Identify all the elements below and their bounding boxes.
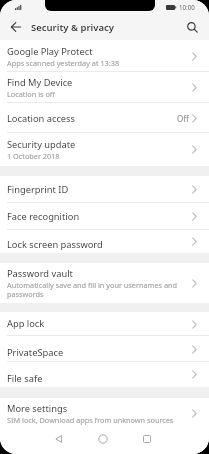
staticText: File safe — [7, 372, 43, 385]
button[interactable]: File safe — [0, 362, 209, 387]
button[interactable]: Location access — [0, 103, 209, 133]
staticText: Security & privacy — [31, 21, 114, 34]
button[interactable] — [140, 432, 154, 446]
button[interactable]: App lock — [0, 312, 209, 336]
button[interactable]: Find My Device — [0, 72, 209, 103]
staticText: Apps scanned yesterday at 13:38 — [7, 58, 120, 68]
button[interactable] — [52, 432, 66, 446]
staticText: 10:00 — [179, 3, 195, 11]
button[interactable]: More settings — [0, 398, 209, 428]
staticText: Location access — [7, 112, 76, 125]
staticText: Find My Device — [7, 76, 73, 89]
staticText: Lock screen password — [7, 238, 103, 251]
staticText: SIM lock, Download apps from unknown sou… — [7, 415, 174, 425]
button[interactable]: Google Play Protect — [0, 40, 209, 72]
staticText: Security update — [7, 138, 76, 151]
staticText: Off — [177, 113, 189, 124]
staticText: Password vault — [7, 267, 73, 280]
staticText: Location is off — [7, 89, 55, 99]
staticText: Face recognition — [7, 210, 80, 223]
button[interactable]: Password vault — [0, 263, 209, 303]
button[interactable]: Face recognition — [0, 203, 209, 230]
staticText: Automatically save and fill in your user… — [7, 280, 177, 299]
staticText: Fingerprint ID — [7, 183, 69, 196]
button[interactable]: Fingerprint ID — [0, 176, 209, 203]
button[interactable] — [96, 432, 110, 446]
staticText: 1 October 2018 — [7, 151, 60, 161]
button[interactable] — [8, 19, 24, 35]
button[interactable]: Security update — [0, 133, 209, 166]
staticText: More settings — [7, 402, 68, 415]
staticText: App lock — [7, 317, 45, 330]
staticText: PrivateSpace — [7, 346, 64, 359]
button[interactable]: PrivateSpace — [0, 336, 209, 362]
staticText: Google Play Protect — [7, 45, 93, 58]
button[interactable] — [184, 19, 200, 35]
button[interactable]: Lock screen password — [0, 230, 209, 253]
